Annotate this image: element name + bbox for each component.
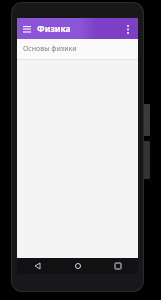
button[interactable]: Open navigation drawer (20, 22, 34, 36)
button[interactable]: Home (58, 258, 98, 274)
staticText: Основы физики (23, 44, 77, 54)
button[interactable]: Recent apps (98, 258, 138, 274)
button[interactable]: Основы физики (17, 39, 138, 60)
staticText: Физика (37, 23, 121, 35)
button[interactable]: More options (121, 22, 135, 36)
button[interactable]: Back (17, 258, 58, 274)
